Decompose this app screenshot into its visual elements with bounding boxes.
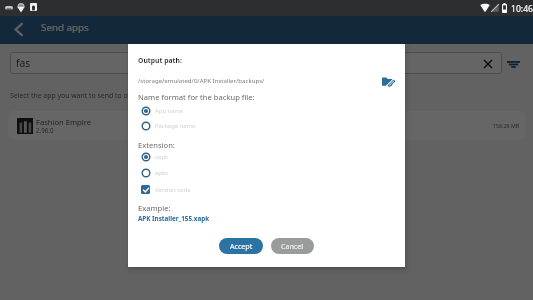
staticText: Accept <box>230 241 253 251</box>
button[interactable]: Sort <box>504 55 522 73</box>
staticText: 158.28 MB <box>493 122 520 129</box>
staticText: Version code <box>155 186 191 194</box>
button[interactable]: Package name <box>141 119 196 132</box>
staticText: /storage/emulated/0/APK Installer/backup… <box>138 76 265 84</box>
staticText: 10:46 <box>511 3 533 15</box>
staticText: fas <box>16 56 31 70</box>
staticText: apks <box>155 169 168 177</box>
button[interactable]: Cancel <box>271 238 314 254</box>
button[interactable]: xapk <box>141 150 169 163</box>
button[interactable]: fas <box>10 52 502 74</box>
staticText: Cancel <box>281 241 304 251</box>
staticText: Output path: <box>138 56 182 65</box>
staticText: Name format for the backup file: <box>138 92 255 102</box>
staticText: Send apps <box>41 21 89 34</box>
staticText: Select the app you want to send to other… <box>10 91 167 100</box>
button[interactable]: Accept <box>219 238 263 254</box>
button[interactable]: Back <box>7 18 29 40</box>
staticText: App name <box>155 107 184 115</box>
button[interactable]: apks <box>141 166 168 179</box>
button[interactable]: Fashion Empire <box>8 111 526 140</box>
staticText: 2.96.0 <box>36 126 54 134</box>
button[interactable]: App name <box>141 104 184 117</box>
button[interactable]: Version code <box>141 183 191 196</box>
staticText: Example: <box>138 203 171 213</box>
button[interactable]: Choose output folder <box>379 73 395 89</box>
staticText: xapk <box>155 153 169 161</box>
staticText: APK Installer_155.xapk <box>138 214 210 223</box>
staticText: Fashion Empire <box>36 117 91 127</box>
button[interactable]: Clear search <box>480 56 495 71</box>
staticText: Package name <box>155 122 196 130</box>
staticText: Extension: <box>138 140 175 150</box>
